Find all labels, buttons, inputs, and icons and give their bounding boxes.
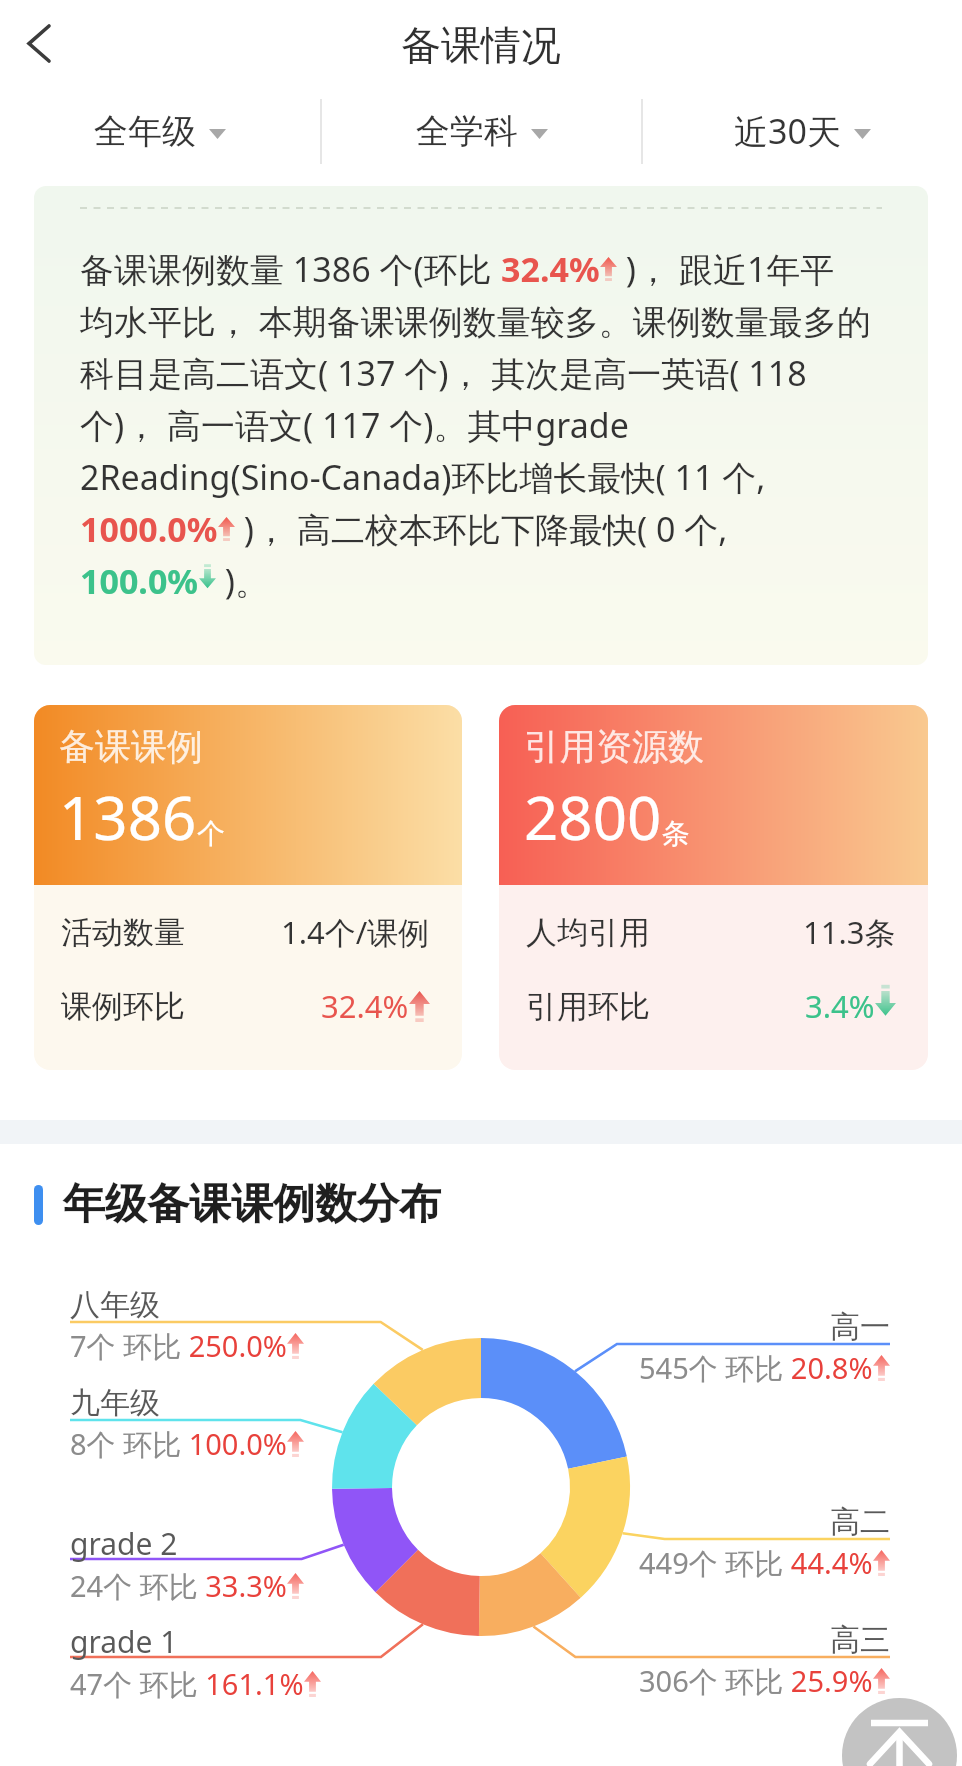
staticText: )， 高二校本环比下降最快( 0 个, bbox=[235, 506, 728, 552]
staticText: 活动数量 bbox=[61, 913, 185, 952]
staticText: 11.3条 bbox=[803, 911, 896, 953]
staticText: 引用环比 bbox=[526, 987, 650, 1026]
staticText: grade 1 bbox=[70, 1621, 370, 1662]
staticText: 个 bbox=[197, 816, 225, 851]
button[interactable]: 引用资源数 bbox=[499, 705, 928, 1070]
staticText: 24个 环比 33.3% bbox=[70, 1566, 287, 1606]
button[interactable]: 近30天 bbox=[643, 88, 962, 174]
button[interactable]: Scroll to top bbox=[842, 1698, 957, 1766]
staticText: 近30天 bbox=[734, 108, 841, 154]
staticText: 个)， 高一语文( 117 个)。其中grade bbox=[80, 402, 629, 448]
staticText: 均水平比， 本期备课课例数量较多。课例数量最多的 bbox=[80, 298, 871, 344]
staticText: 高二 bbox=[590, 1503, 890, 1541]
staticText: grade 2 bbox=[70, 1523, 370, 1564]
staticText: 8个 环比 100.0% bbox=[70, 1424, 287, 1464]
staticText: 备课课例 bbox=[59, 724, 203, 769]
staticText: 32.4% bbox=[501, 246, 600, 292]
staticText: 1000.0% bbox=[80, 506, 218, 552]
staticText: )。 bbox=[216, 558, 270, 604]
staticText: 全学科 bbox=[416, 110, 518, 153]
staticText: 全年级 bbox=[94, 110, 196, 153]
button[interactable]: 全年级 bbox=[0, 88, 320, 174]
staticText: 九年级 bbox=[70, 1384, 370, 1422]
staticText: 1.4个/课例 bbox=[281, 911, 430, 953]
staticText: 条 bbox=[662, 816, 690, 851]
staticText: 高一 bbox=[590, 1308, 890, 1346]
staticText: 545个 环比 20.8% bbox=[639, 1348, 873, 1388]
staticText: 2800 bbox=[524, 776, 662, 858]
staticText: 引用资源数 bbox=[524, 724, 704, 769]
staticText: 3.4% bbox=[805, 985, 875, 1027]
staticText: 高三 bbox=[590, 1621, 890, 1659]
staticText: 47个 环比 161.1% bbox=[70, 1664, 304, 1704]
staticText: 7个 环比 250.0% bbox=[70, 1326, 287, 1366]
staticText: 八年级 bbox=[70, 1286, 370, 1324]
staticText: )， 跟近1年平 bbox=[617, 246, 835, 292]
staticText: 2Reading(Sino-Canada)环比增长最快( 11 个, bbox=[80, 454, 766, 500]
button[interactable]: Back bbox=[4, 0, 76, 88]
button[interactable]: 全学科 bbox=[322, 88, 641, 174]
staticText: 人均引用 bbox=[526, 913, 650, 952]
button[interactable]: 备课课例 bbox=[34, 705, 462, 1070]
staticText: 年级备课课例数分布 bbox=[63, 1178, 441, 1231]
staticText: 备课情况 bbox=[401, 20, 561, 70]
staticText: 100.0% bbox=[80, 558, 199, 604]
staticText: 306个 环比 25.9% bbox=[639, 1661, 873, 1701]
staticText: 1386 bbox=[59, 776, 197, 858]
staticText: 32.4% bbox=[321, 985, 409, 1027]
staticText: 科目是高二语文( 137 个)， 其次是高一英语( 118 bbox=[80, 350, 807, 396]
staticText: 449个 环比 44.4% bbox=[639, 1543, 873, 1583]
staticText: 备课课例数量 1386 个(环比 bbox=[80, 246, 501, 292]
staticText: 课例环比 bbox=[61, 987, 185, 1026]
